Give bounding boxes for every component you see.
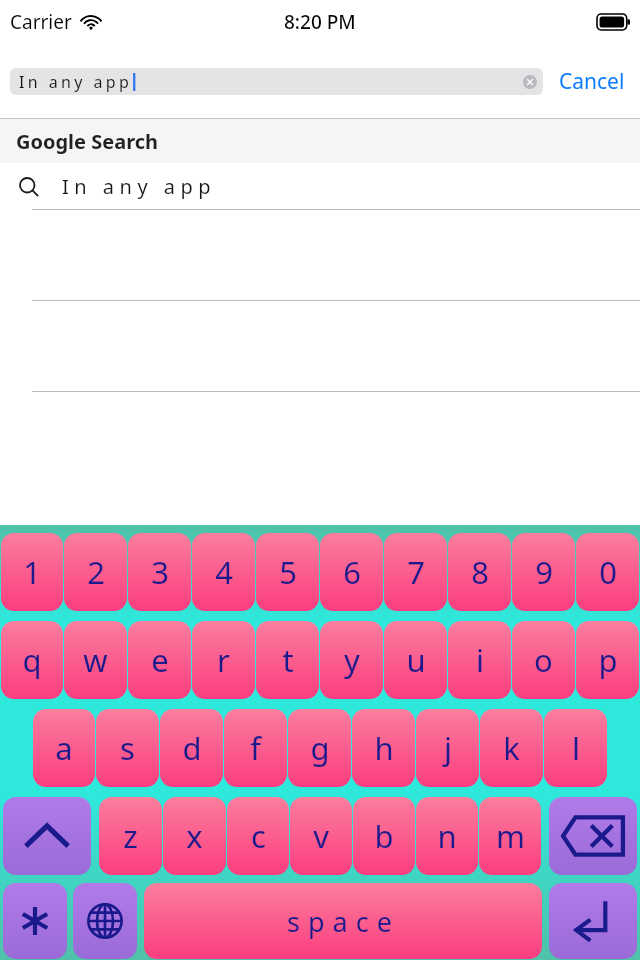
- staticText: r: [217, 639, 230, 681]
- button[interactable]: u: [384, 621, 447, 699]
- button[interactable]: f: [224, 709, 287, 787]
- staticText: v: [313, 815, 329, 857]
- button[interactable]: 8: [448, 533, 511, 611]
- staticText: 1: [23, 551, 41, 593]
- button[interactable]: r: [192, 621, 255, 699]
- staticText: In any app: [19, 71, 133, 93]
- button[interactable]: a: [33, 709, 95, 787]
- staticText: 8:20 PM: [284, 9, 356, 35]
- button[interactable]: Change keyboard: [73, 883, 137, 959]
- staticText: m: [496, 815, 525, 857]
- staticText: p: [598, 639, 618, 681]
- button[interactable]: b: [353, 797, 415, 875]
- button[interactable]: g: [288, 709, 351, 787]
- staticText: space: [287, 903, 400, 940]
- button[interactable]: space: [144, 883, 542, 959]
- button[interactable]: h: [352, 709, 415, 787]
- staticText: f: [250, 727, 261, 769]
- button[interactable]: l: [544, 709, 607, 787]
- button[interactable]: Cancel: [557, 61, 627, 102]
- button[interactable]: k: [480, 709, 543, 787]
- staticText: 4: [215, 551, 233, 593]
- button[interactable]: v: [290, 797, 352, 875]
- staticText: o: [534, 639, 553, 681]
- staticText: j: [444, 727, 452, 769]
- button[interactable]: o: [512, 621, 575, 699]
- button[interactable]: q: [1, 621, 63, 699]
- staticText: In any app: [62, 173, 217, 200]
- staticText: u: [406, 639, 426, 681]
- button[interactable]: d: [160, 709, 223, 787]
- staticText: g: [310, 727, 330, 769]
- staticText: 8: [471, 551, 489, 593]
- staticText: Google Search: [16, 128, 159, 155]
- staticText: i: [476, 639, 484, 681]
- button[interactable]: y: [320, 621, 383, 699]
- button[interactable]: 4: [192, 533, 255, 611]
- button[interactable]: 0: [576, 533, 639, 611]
- button[interactable]: Backspace: [549, 797, 637, 875]
- button[interactable]: In any app: [0, 163, 640, 209]
- button[interactable]: z: [99, 797, 162, 875]
- staticText: 9: [535, 551, 553, 593]
- button[interactable]: 9: [512, 533, 575, 611]
- button[interactable]: Shift: [3, 797, 91, 875]
- staticText: a: [55, 727, 73, 769]
- staticText: t: [282, 639, 294, 681]
- button[interactable]: 6: [320, 533, 383, 611]
- button[interactable]: Symbols: [3, 883, 67, 959]
- staticText: Carrier: [10, 9, 72, 35]
- button[interactable]: t: [256, 621, 319, 699]
- staticText: b: [374, 815, 394, 857]
- button[interactable]: x: [163, 797, 226, 875]
- staticText: 3: [151, 551, 169, 593]
- button[interactable]: s: [96, 709, 159, 787]
- staticText: 5: [279, 551, 297, 593]
- staticText: 7: [407, 551, 425, 593]
- button[interactable]: 1: [1, 533, 63, 611]
- staticText: h: [374, 727, 394, 769]
- staticText: d: [182, 727, 202, 769]
- button[interactable]: 7: [384, 533, 447, 611]
- staticText: c: [251, 815, 266, 857]
- staticText: q: [22, 639, 42, 681]
- staticText: e: [151, 639, 169, 681]
- staticText: x: [186, 815, 203, 857]
- button[interactable]: Return: [549, 883, 637, 959]
- staticText: 6: [343, 551, 361, 593]
- button[interactable]: n: [416, 797, 478, 875]
- staticText: z: [123, 815, 138, 857]
- button[interactable]: i: [448, 621, 511, 699]
- staticText: Cancel: [559, 67, 625, 96]
- button[interactable]: 3: [128, 533, 191, 611]
- button[interactable]: c: [227, 797, 289, 875]
- staticText: 0: [599, 551, 617, 593]
- staticText: l: [572, 727, 580, 769]
- button[interactable]: m: [479, 797, 541, 875]
- button[interactable]: e: [128, 621, 191, 699]
- button[interactable]: 2: [64, 533, 127, 611]
- staticText: s: [120, 727, 135, 769]
- staticText: w: [83, 639, 108, 681]
- button[interactable]: j: [416, 709, 479, 787]
- staticText: k: [503, 727, 520, 769]
- button[interactable]: 5: [256, 533, 319, 611]
- staticText: y: [344, 639, 360, 681]
- button[interactable]: In any app: [10, 68, 543, 95]
- staticText: n: [437, 815, 457, 857]
- button[interactable]: w: [64, 621, 127, 699]
- button[interactable]: Clear text: [523, 75, 537, 89]
- button[interactable]: p: [576, 621, 639, 699]
- staticText: 2: [87, 551, 105, 593]
